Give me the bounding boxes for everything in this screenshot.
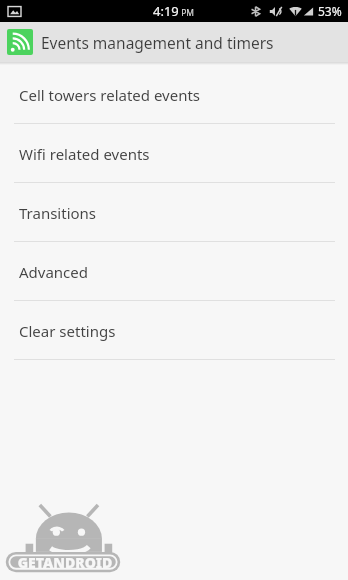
button[interactable]: Clear settings [0, 301, 348, 360]
staticText: 53% [318, 3, 342, 19]
staticText: Wifi related events [19, 144, 150, 164]
staticText: PM [179, 7, 195, 19]
button[interactable]: Wifi related events [0, 124, 348, 183]
button[interactable]: Cell towers related events [0, 65, 348, 124]
button[interactable]: Advanced [0, 242, 348, 301]
other: App icon [7, 29, 33, 55]
staticText: Transitions [19, 203, 97, 223]
staticText: Clear settings [19, 321, 116, 341]
staticText: GETANDROID [11, 553, 119, 572]
button[interactable]: Transitions [0, 183, 348, 242]
staticText: 4:19 [153, 2, 179, 20]
staticText: Advanced [19, 262, 89, 282]
staticText: Events management and timers [41, 32, 274, 53]
staticText: Cell towers related events [19, 85, 201, 105]
